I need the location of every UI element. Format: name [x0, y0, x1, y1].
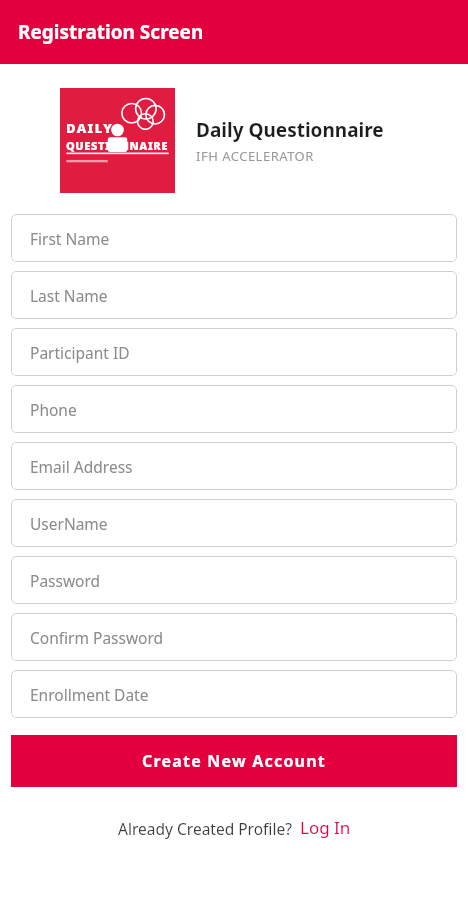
staticText: QUESTIONNAIRE [66, 138, 169, 153]
staticText: IFH ACCELERATOR [196, 147, 314, 165]
button[interactable]: Email Address [11, 442, 457, 490]
staticText: Daily Questionnaire [196, 117, 384, 143]
staticText: DAILY [66, 119, 114, 137]
staticText: Last Name [30, 285, 108, 306]
staticText: Enrollment Date [30, 684, 149, 705]
staticText: Password [30, 570, 101, 591]
staticText: Already Created Profile? [118, 818, 292, 839]
staticText: Email Address [30, 456, 133, 477]
button[interactable]: Participant ID [11, 328, 457, 376]
staticText: Confirm Password [30, 627, 164, 648]
button[interactable]: Last Name [11, 271, 457, 319]
button[interactable]: Create New Account [11, 735, 457, 787]
button[interactable]: Enrollment Date [11, 670, 457, 718]
staticText: Participant ID [30, 342, 130, 363]
button[interactable]: Confirm Password [11, 613, 457, 661]
button[interactable]: Password [11, 556, 457, 604]
button[interactable]: Log In [300, 816, 351, 839]
staticText: First Name [30, 228, 110, 249]
staticText: Create New Account [142, 750, 326, 772]
staticText: Registration Screen [18, 19, 204, 45]
button[interactable]: First Name [11, 214, 457, 262]
staticText: Phone [30, 399, 77, 420]
staticText: Log In [300, 816, 351, 839]
button[interactable]: UserName [11, 499, 457, 547]
button[interactable]: Phone [11, 385, 457, 433]
staticText: UserName [30, 513, 108, 534]
